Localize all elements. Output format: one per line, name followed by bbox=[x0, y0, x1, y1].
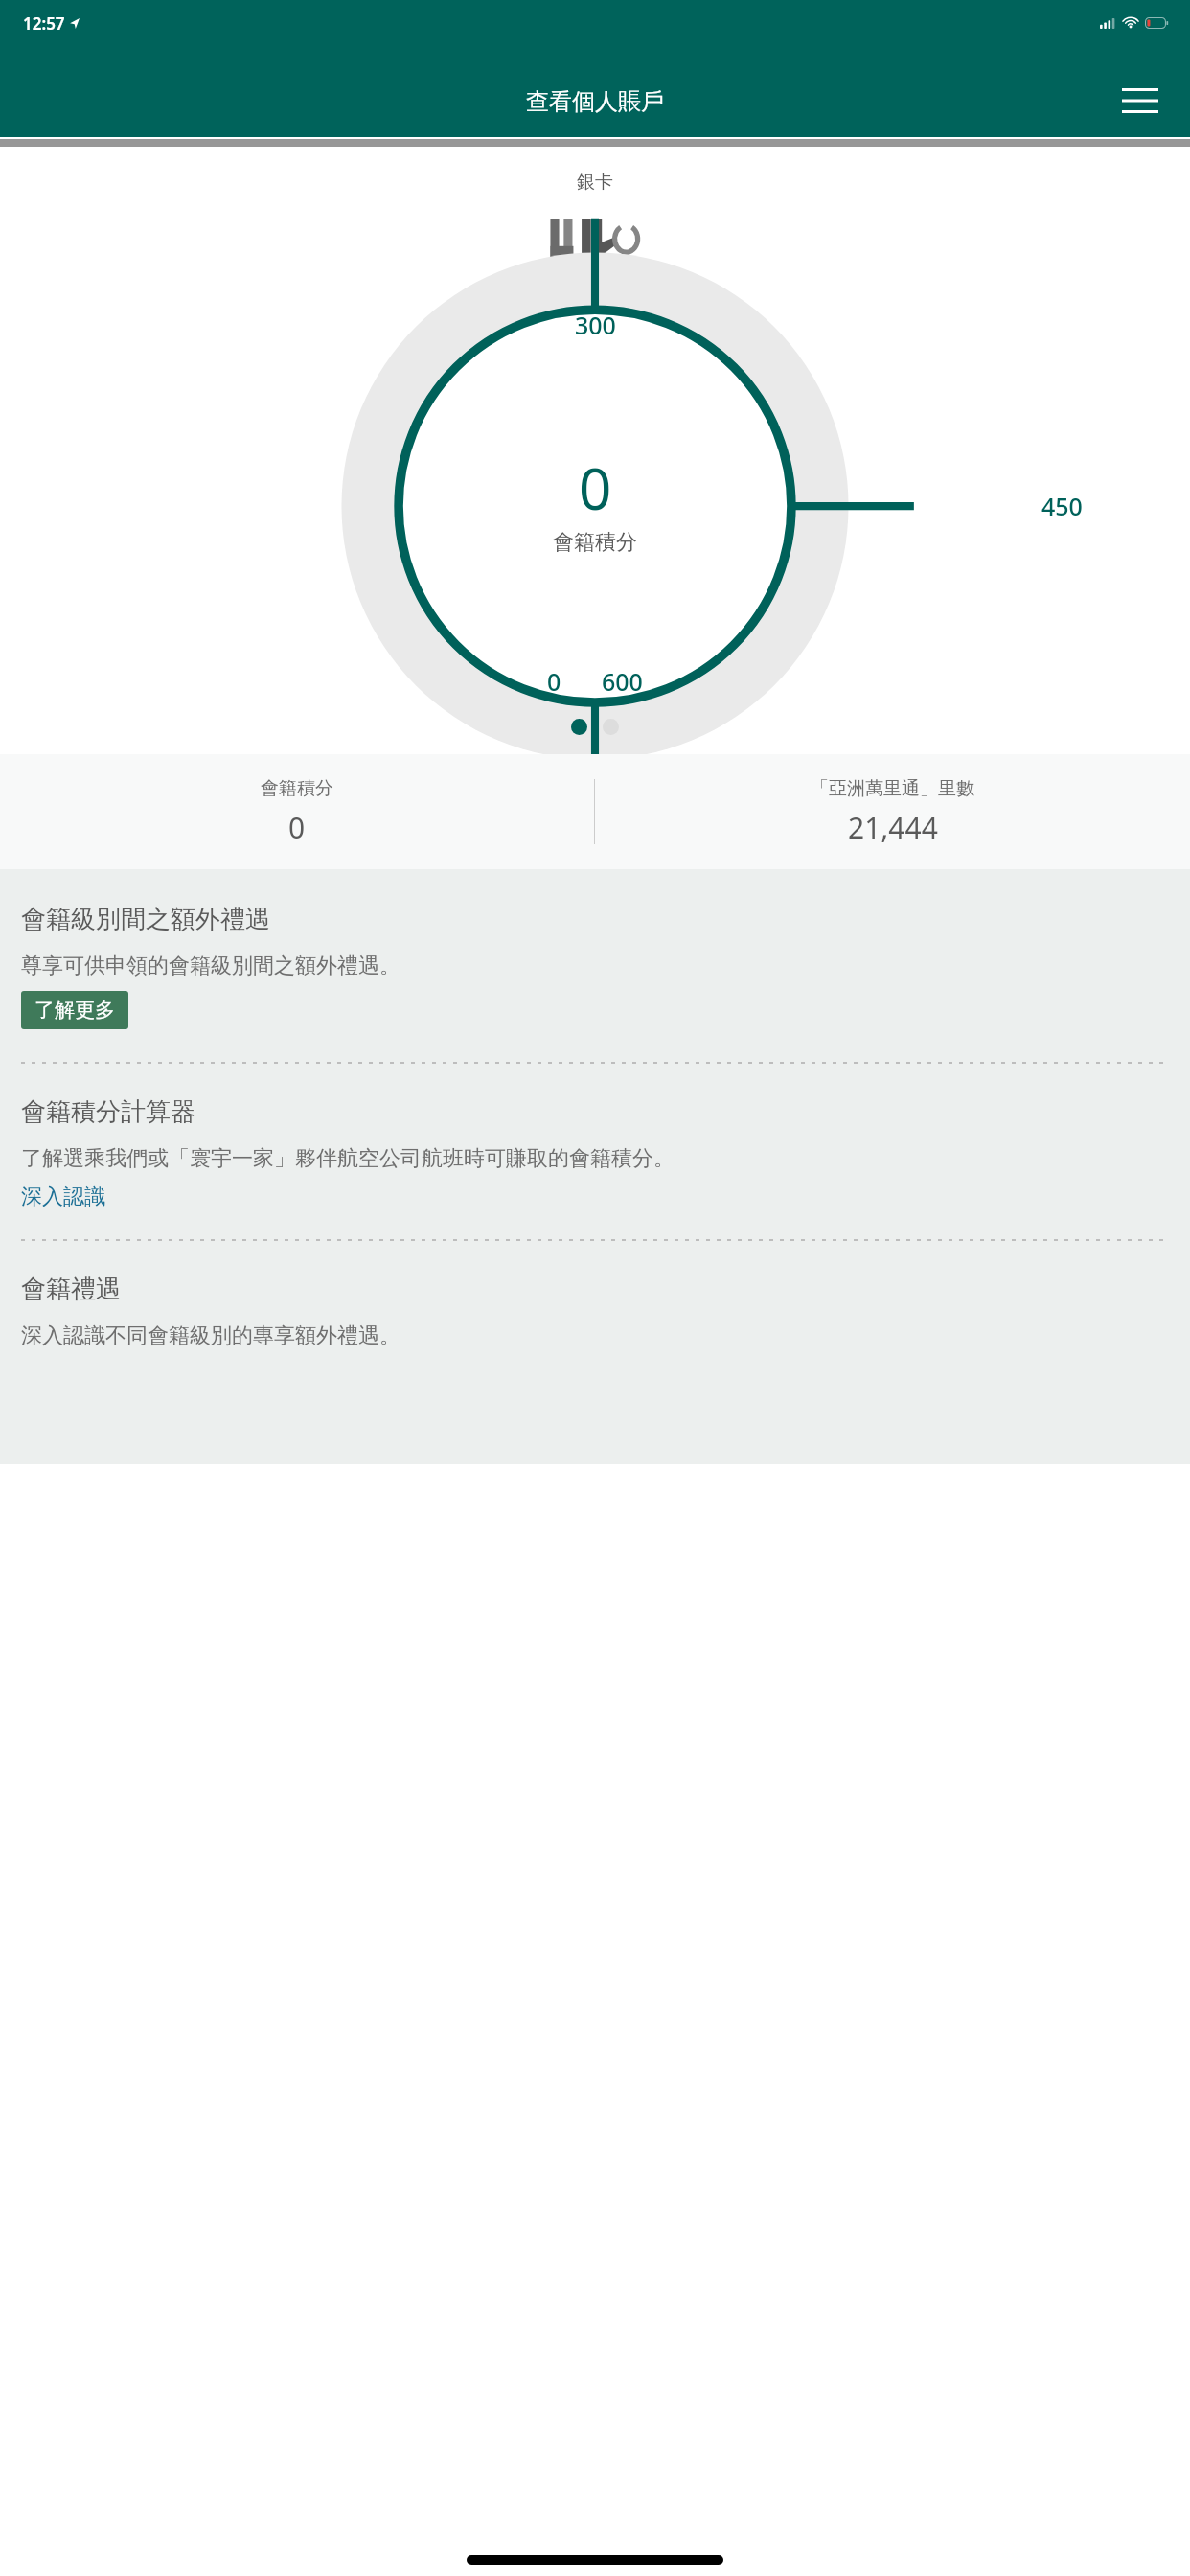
staticText: 尊享可供申領的會籍級別間之額外禮遇。 bbox=[21, 953, 400, 979]
staticText: 深入認識不同會籍級別的專享額外禮遇。 bbox=[21, 1322, 400, 1349]
staticText: 會籍積分計算器 bbox=[21, 1096, 195, 1128]
staticText: 會籍積分 bbox=[553, 529, 637, 556]
button[interactable]: Page 1 bbox=[571, 719, 587, 735]
button[interactable]: 了解更多 bbox=[21, 991, 128, 1029]
staticText: 銀卡 bbox=[577, 171, 613, 194]
button[interactable]: Menu bbox=[1113, 74, 1167, 127]
staticText: 了解更多 bbox=[34, 998, 115, 1023]
staticText: 300 bbox=[575, 309, 616, 341]
staticText: 查看個人賬戶 bbox=[526, 87, 664, 116]
staticText: 了解選乘我們或「寰宇一家」夥伴航空公司航班時可賺取的會籍積分。 bbox=[21, 1145, 675, 1172]
staticText: 會籍禮遇 bbox=[21, 1274, 121, 1305]
staticText: 會籍積分 bbox=[261, 777, 333, 800]
button[interactable]: 會籍積分 bbox=[0, 754, 594, 869]
staticText: 2019年12月31日前續會 bbox=[514, 274, 676, 295]
staticText: 0 bbox=[579, 448, 612, 527]
staticText: 450 bbox=[1041, 490, 1083, 522]
staticText: 深入認識 bbox=[21, 1184, 105, 1210]
staticText: 0 bbox=[547, 665, 561, 698]
staticText: 0 bbox=[288, 808, 306, 847]
staticText: 21,444 bbox=[848, 808, 938, 847]
button[interactable]: Page 2 bbox=[603, 719, 619, 735]
staticText: 12:57 bbox=[23, 12, 65, 34]
staticText: 600 bbox=[602, 665, 643, 698]
button[interactable]: 深入認識 bbox=[21, 1184, 105, 1210]
staticText: 會籍級別間之額外禮遇 bbox=[21, 904, 270, 935]
button[interactable]: 「亞洲萬里通」里數 bbox=[595, 754, 1190, 869]
staticText: 「亞洲萬里通」里數 bbox=[811, 777, 974, 800]
